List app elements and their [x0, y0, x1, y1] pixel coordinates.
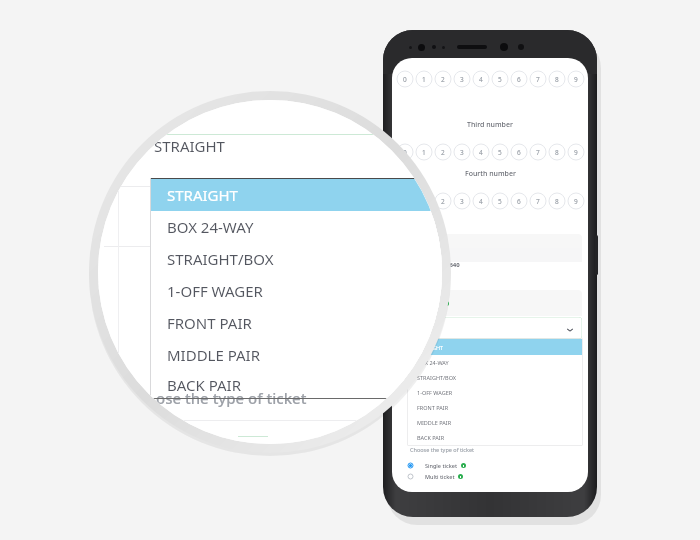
staticText: 4	[479, 197, 483, 206]
button[interactable]: FRONT PAIR	[408, 400, 582, 415]
button[interactable]: 9	[567, 143, 585, 161]
button[interactable]: 5	[491, 143, 509, 161]
staticText: Fourth number	[465, 169, 516, 179]
staticText: Choose the type of ticket	[410, 446, 475, 453]
staticText: 5	[498, 197, 502, 206]
staticText: 1-OFF WAGER	[417, 389, 453, 396]
button[interactable]: 7	[529, 143, 547, 161]
button[interactable]: Draw number:	[398, 234, 582, 286]
button[interactable]: 8	[548, 70, 566, 88]
staticText: STRAIGHT/BOX	[167, 249, 274, 269]
staticText: MIDDLE PAIR	[167, 345, 261, 365]
button[interactable]: 4	[472, 192, 490, 210]
button[interactable]: 1	[415, 192, 433, 210]
staticText: FRONT PAIR	[167, 313, 252, 333]
staticText: 1	[422, 75, 426, 84]
staticText: 9	[574, 75, 578, 84]
button[interactable]: 3	[453, 192, 471, 210]
staticText: 3	[460, 75, 464, 84]
staticText: 0	[403, 148, 407, 157]
staticText: ose the type of ticket	[156, 388, 307, 408]
staticText: BOX 24-WAY	[167, 217, 254, 237]
staticText: 1	[422, 148, 426, 157]
staticText: 1-OFF WAGER	[167, 281, 263, 301]
staticText: 2	[441, 197, 445, 206]
button[interactable]: 1	[415, 143, 433, 161]
staticText: BACK PAIR	[167, 375, 242, 395]
staticText: Ticket type	[410, 299, 441, 307]
button[interactable]: FRONT PAIR	[150, 307, 442, 339]
staticText: 6	[517, 148, 521, 157]
button[interactable]: 9	[567, 192, 585, 210]
button[interactable]: 3	[453, 143, 471, 161]
button[interactable]: 6	[510, 143, 528, 161]
button[interactable]: BOX 24-WAY	[408, 355, 582, 370]
button[interactable]: 0	[396, 143, 414, 161]
staticText: 5	[498, 148, 502, 157]
staticText: 8	[555, 75, 559, 84]
button[interactable]: 7	[529, 192, 547, 210]
button[interactable]: 2	[434, 143, 452, 161]
staticText: 5	[498, 75, 502, 84]
button[interactable]: BACK PAIR	[150, 371, 442, 399]
staticText: STRAIGHT	[410, 325, 439, 333]
button[interactable]: 1-OFF WAGER	[408, 385, 582, 400]
button[interactable]: STRAIGHT/BOX	[408, 370, 582, 385]
staticText: 7	[536, 197, 540, 206]
staticText: 7	[536, 148, 540, 157]
button[interactable]: BACK PAIR	[408, 430, 582, 445]
button[interactable]: 5	[491, 192, 509, 210]
staticText: 3	[460, 197, 464, 206]
staticText: 9	[574, 148, 578, 157]
staticText: 2640	[446, 261, 460, 269]
staticText: STRAIGHT	[167, 185, 238, 205]
button[interactable]: 7	[529, 70, 547, 88]
button[interactable]: STRAIGHT	[398, 317, 582, 339]
staticText: 4	[479, 75, 483, 84]
button[interactable]: 8	[548, 192, 566, 210]
button[interactable]: STRAIGHT	[150, 179, 442, 211]
button[interactable]: 4	[472, 143, 490, 161]
button[interactable]: Single ticket	[408, 460, 466, 470]
button[interactable]: 0	[396, 70, 414, 88]
button[interactable]: 3	[453, 70, 471, 88]
button[interactable]: 2	[434, 192, 452, 210]
button[interactable]: 4	[472, 70, 490, 88]
staticText: 3	[460, 148, 464, 157]
staticText: 8	[555, 197, 559, 206]
button[interactable]: 6	[510, 70, 528, 88]
button[interactable]: MIDDLE PAIR	[150, 339, 442, 371]
staticText: 8	[555, 148, 559, 157]
button[interactable]: 8	[548, 143, 566, 161]
other: Open ticket type dropdown	[566, 326, 574, 334]
button[interactable]: 1	[415, 70, 433, 88]
staticText: 2	[441, 75, 445, 84]
button[interactable]: 1-OFF WAGER	[150, 275, 442, 307]
button[interactable]: MIDDLE PAIR	[408, 415, 582, 430]
staticText: Third number	[467, 120, 513, 130]
button[interactable]: BOX 24-WAY	[150, 211, 442, 243]
button[interactable]: STRAIGHT	[408, 339, 582, 355]
staticText: 2	[441, 148, 445, 157]
button[interactable]: STRAIGHT/BOX	[150, 243, 442, 275]
staticText: STRAIGHT	[154, 136, 225, 156]
staticText: FRONT PAIR	[417, 404, 449, 411]
staticText: 7	[536, 75, 540, 84]
button[interactable]: 2	[434, 70, 452, 88]
staticText: Single ticket	[425, 462, 458, 469]
staticText: 6	[517, 197, 521, 206]
button[interactable]: 5	[491, 70, 509, 88]
staticText: Draw number:	[410, 261, 453, 269]
staticText: 9	[574, 197, 578, 206]
staticText: MIDDLE PAIR	[417, 419, 452, 426]
staticText: Multi ticket	[425, 473, 455, 480]
staticText: STRAIGHT/BOX	[417, 374, 457, 381]
button[interactable]: 9	[567, 70, 585, 88]
staticText: 0	[403, 75, 407, 84]
staticText: BACK PAIR	[417, 434, 445, 441]
button[interactable]: 6	[510, 192, 528, 210]
button[interactable]: Multi ticket	[408, 471, 463, 481]
staticText: 4	[479, 148, 483, 157]
